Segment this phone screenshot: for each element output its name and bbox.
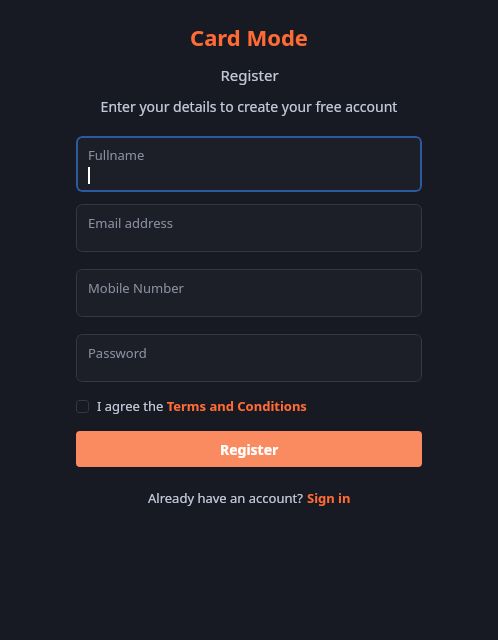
staticText: Fullname bbox=[88, 146, 145, 164]
button[interactable]: Password bbox=[76, 334, 422, 382]
staticText: Sign in bbox=[307, 489, 351, 507]
button[interactable]: Mobile Number bbox=[76, 269, 422, 317]
staticText: Mobile Number bbox=[88, 279, 184, 297]
staticText: Password bbox=[88, 344, 147, 362]
staticText: Email address bbox=[88, 214, 173, 232]
button[interactable]: Email address bbox=[76, 204, 422, 252]
staticText: Register bbox=[220, 440, 279, 459]
button[interactable]: Fullname bbox=[76, 136, 422, 192]
button[interactable]: I agree the Terms and Conditions bbox=[76, 397, 422, 415]
button[interactable]: Sign in bbox=[307, 489, 351, 507]
staticText: Register bbox=[220, 65, 279, 85]
staticText: Already have an account? bbox=[148, 489, 307, 507]
staticText: Card Mode bbox=[190, 22, 308, 52]
staticText: I agree the Terms and Conditions bbox=[97, 397, 307, 415]
staticText: Enter your details to create your free a… bbox=[76, 97, 422, 116]
button[interactable]: Register bbox=[76, 431, 422, 467]
